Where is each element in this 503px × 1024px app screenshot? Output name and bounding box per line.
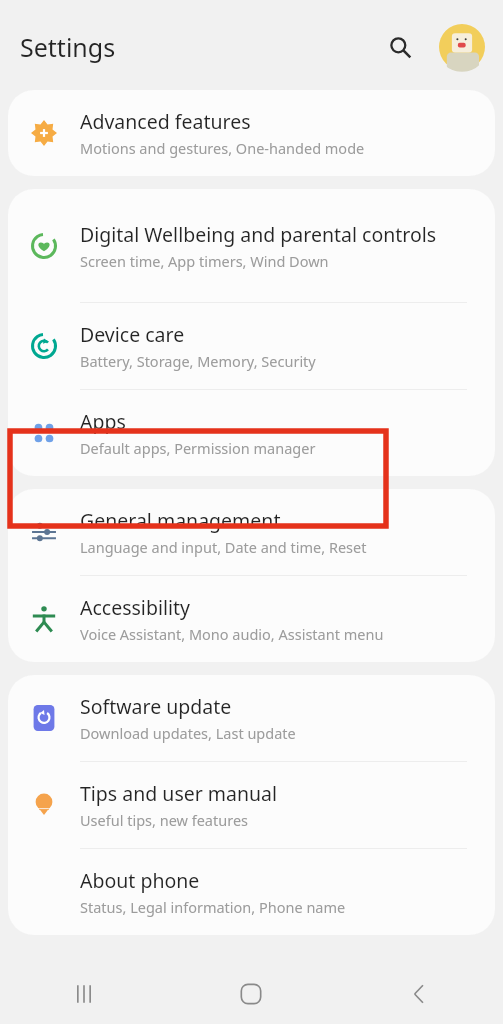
staticText: Apps <box>80 408 126 435</box>
staticText: Download updates, Last update <box>80 723 296 743</box>
button[interactable]: Back <box>391 966 447 1022</box>
staticText: Software update <box>80 693 232 720</box>
staticText: Digital Wellbeing and parental controls <box>80 221 437 248</box>
staticText: Device care <box>80 321 185 348</box>
button[interactable]: Accessibility <box>8 576 495 662</box>
button[interactable]: Search <box>377 24 423 70</box>
button[interactable]: Software update <box>8 675 495 761</box>
button[interactable]: Tips and user manual <box>8 762 495 848</box>
staticText: Battery, Storage, Memory, Security <box>80 351 316 371</box>
staticText: About phone <box>80 867 200 894</box>
staticText: Advanced features <box>80 108 251 135</box>
staticText: Screen time, App timers, Wind Down <box>80 251 329 271</box>
staticText: Language and input, Date and time, Reset <box>80 537 367 557</box>
button[interactable]: Advanced features <box>8 90 495 176</box>
staticText: General management <box>80 507 281 534</box>
staticText: Accessibility <box>80 594 190 621</box>
button[interactable]: Apps <box>8 390 495 476</box>
button[interactable]: Account <box>437 22 487 72</box>
staticText: Voice Assistant, Mono audio, Assistant m… <box>80 624 384 644</box>
staticText: Status, Legal information, Phone name <box>80 897 346 917</box>
staticText: Default apps, Permission manager <box>80 438 316 458</box>
button[interactable]: About phone <box>8 849 495 935</box>
button[interactable]: General management <box>8 489 495 575</box>
staticText: Tips and user manual <box>80 780 278 807</box>
button[interactable]: Home <box>223 966 279 1022</box>
staticText: Settings <box>20 30 116 64</box>
button[interactable]: Digital Wellbeing and parental controls <box>8 189 495 302</box>
button[interactable]: Recents <box>56 966 112 1022</box>
button[interactable]: Device care <box>8 303 495 389</box>
staticText: Motions and gestures, One-handed mode <box>80 138 365 158</box>
staticText: Useful tips, new features <box>80 810 249 830</box>
